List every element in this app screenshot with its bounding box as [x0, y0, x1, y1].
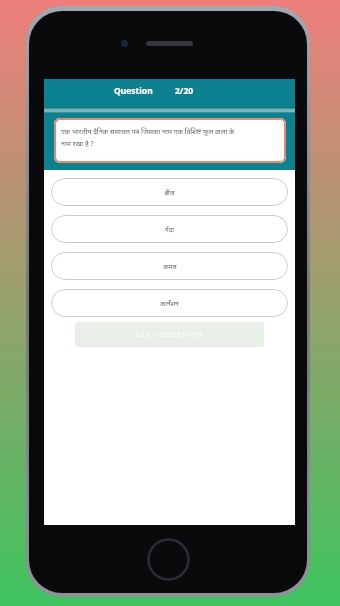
staticText: कमल — [163, 262, 177, 271]
button[interactable]: गेंदा — [51, 215, 288, 243]
button[interactable]: कार्नेशन — [51, 289, 288, 317]
staticText: कार्नेशन — [160, 299, 179, 308]
staticText: गेंदा — [165, 225, 174, 234]
staticText: बीज — [164, 188, 175, 197]
staticText: NEXT QUESTION — [135, 330, 204, 340]
staticText: एक भारतीय दैनिक समाचार पत्र जिसका नाम एक… — [61, 127, 235, 148]
button[interactable]: बीज — [51, 178, 288, 206]
staticText: 2/20 — [175, 85, 194, 97]
staticText: Question — [114, 85, 153, 97]
button[interactable]: कमल — [51, 252, 288, 280]
